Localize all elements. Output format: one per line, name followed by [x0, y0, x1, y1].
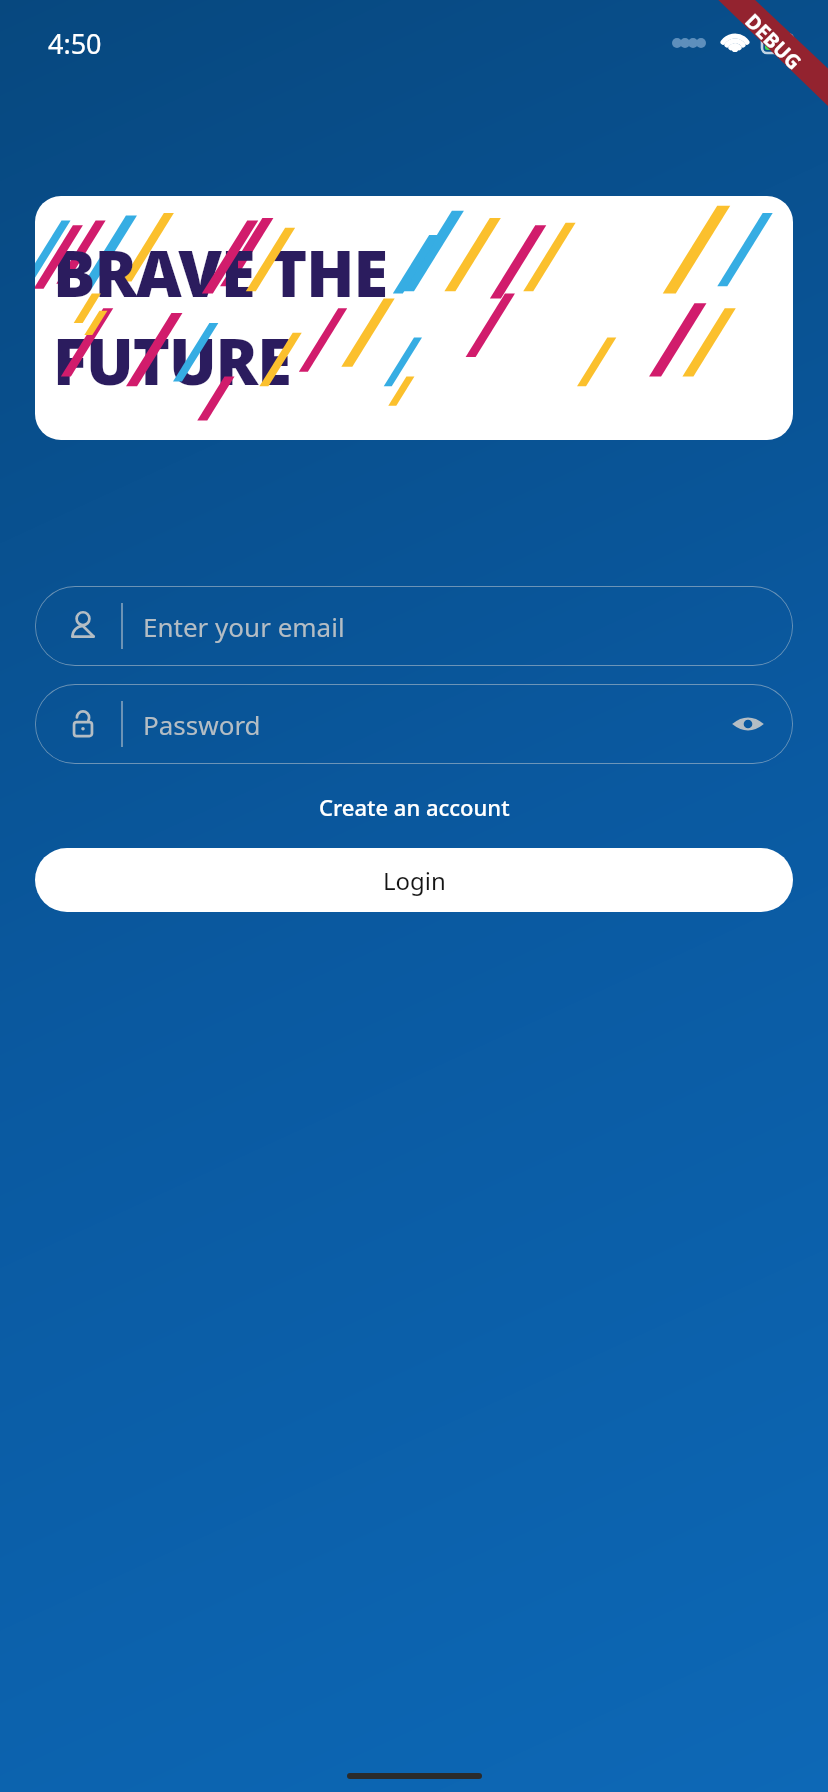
other: Password [67, 708, 99, 740]
staticText: Enter your email [143, 609, 793, 644]
button[interactable]: Login [35, 848, 793, 912]
staticText: DEBUG [740, 8, 807, 75]
button[interactable]: Password [35, 684, 793, 764]
staticText: BRAVE THE [53, 230, 388, 316]
staticText: Login [383, 864, 446, 897]
button[interactable]: Show password [721, 697, 775, 751]
button[interactable]: Create an account [0, 792, 828, 822]
button[interactable]: Account [35, 586, 793, 666]
staticText: FUTURE [53, 318, 291, 404]
staticText: 4:50 [48, 25, 102, 62]
button[interactable]: BRAVE THE [35, 196, 793, 440]
other: Account [67, 610, 99, 642]
staticText: Password [143, 707, 721, 742]
staticText: Create an account [319, 792, 510, 822]
